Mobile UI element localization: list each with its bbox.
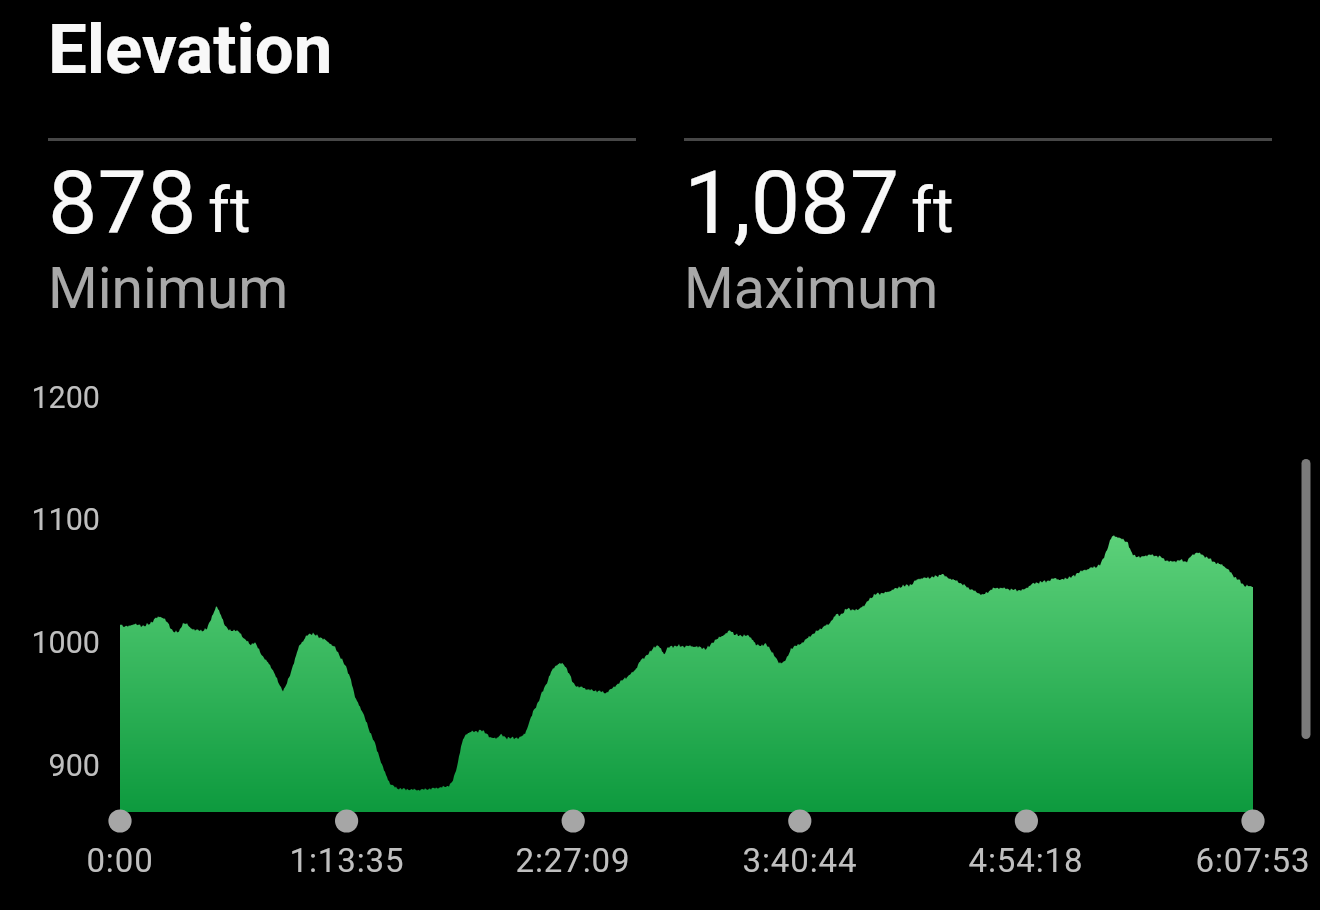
staticText: 878 [48, 151, 197, 254]
staticText: Elevation [48, 9, 333, 90]
staticText: Minimum [48, 255, 289, 322]
staticText: 1000 [0, 625, 100, 661]
staticText: ft [208, 174, 251, 248]
staticText: 6:07:53 [1113, 841, 1320, 880]
staticText: 2:27:09 [433, 841, 713, 880]
staticText: 1,087 [684, 151, 900, 254]
staticText: 1:13:35 [207, 841, 487, 880]
button[interactable]: Elevation over time chart [24, 370, 1296, 870]
staticText: 4:54:18 [886, 841, 1166, 880]
staticText: Maximum [684, 255, 939, 322]
staticText: 0:00 [0, 841, 260, 880]
staticText: 1100 [0, 502, 100, 538]
staticText: 900 [0, 748, 100, 784]
staticText: 3:40:44 [660, 841, 940, 880]
button[interactable]: 878 [48, 138, 636, 318]
staticText: ft [911, 174, 954, 248]
button[interactable]: 1,087 [684, 138, 1272, 318]
staticText: 1200 [0, 380, 100, 416]
